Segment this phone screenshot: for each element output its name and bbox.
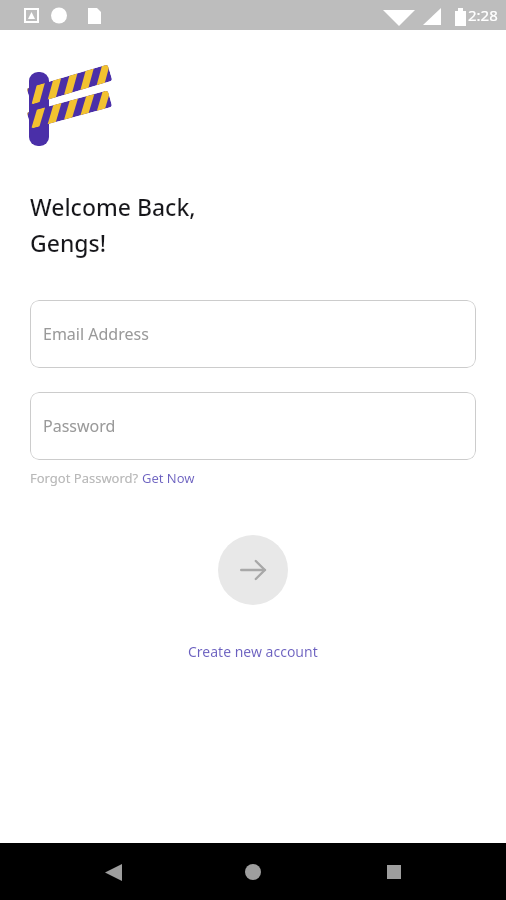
button[interactable]: Password xyxy=(30,392,476,460)
staticText: Password xyxy=(43,415,116,437)
button[interactable]: Home xyxy=(225,844,281,900)
staticText: Gengs! xyxy=(30,227,107,258)
staticText: 2:28 xyxy=(468,5,498,25)
button[interactable]: Create new account xyxy=(180,638,326,665)
button[interactable]: Email Address xyxy=(30,300,476,368)
button[interactable]: Recents xyxy=(366,844,422,900)
staticText: Email Address xyxy=(43,323,149,345)
staticText: Create new account xyxy=(188,642,318,661)
button[interactable]: Back xyxy=(85,844,141,900)
staticText: Get Now xyxy=(142,469,195,487)
staticText: Welcome Back, xyxy=(30,191,196,222)
button[interactable]: Get Now xyxy=(142,469,195,487)
button[interactable]: Sign in xyxy=(218,535,288,605)
staticText: Forgot Password? xyxy=(30,469,142,487)
